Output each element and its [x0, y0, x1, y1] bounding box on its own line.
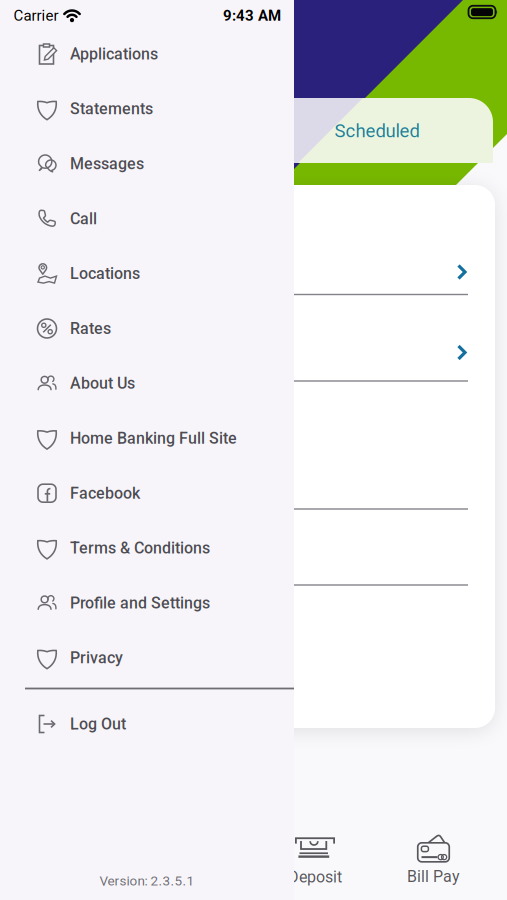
staticText: 9:43 AM: [223, 7, 281, 24]
staticText: Privacy: [70, 648, 123, 667]
button[interactable]: Profile and Settings: [34, 580, 294, 626]
button[interactable]: Rates: [34, 305, 294, 351]
staticText: Facebook: [70, 484, 140, 503]
staticText: Profile and Settings: [70, 594, 210, 612]
button[interactable]: Messages: [34, 141, 294, 187]
staticText: Scheduled: [334, 120, 419, 142]
button[interactable]: About Us: [34, 360, 294, 406]
staticText: Terms & Conditions: [70, 539, 210, 557]
button[interactable]: Locations: [34, 251, 294, 297]
button[interactable]: Bill Pay: [378, 830, 488, 890]
staticText: Log Out: [70, 715, 126, 733]
button[interactable]: [12, 295, 495, 381]
staticText: Messages: [70, 154, 144, 173]
button[interactable]: Facebook: [34, 470, 294, 516]
button[interactable]: Terms & Conditions: [34, 525, 294, 571]
button[interactable]: Scheduled: [257, 98, 497, 163]
staticText: Version: 2.3.5.1: [99, 873, 194, 889]
button[interactable]: Log Out: [34, 701, 294, 747]
button[interactable]: Statements: [34, 86, 294, 132]
staticText: Locations: [70, 264, 140, 283]
button[interactable]: Home Banking Full Site: [34, 415, 294, 461]
staticText: Carrier: [13, 7, 58, 24]
button[interactable]: Applications: [34, 31, 294, 77]
button[interactable]: Deposit: [260, 831, 370, 891]
staticText: About Us: [70, 374, 135, 393]
staticText: Applications: [70, 45, 158, 63]
staticText: Call: [70, 209, 97, 228]
staticText: Deposit: [288, 868, 342, 886]
button[interactable]: [12, 230, 495, 295]
staticText: Rates: [70, 319, 111, 338]
staticText: Home Banking Full Site: [70, 429, 237, 448]
staticText: Bill Pay: [407, 867, 460, 886]
staticText: Statements: [70, 99, 153, 118]
button[interactable]: Privacy: [34, 635, 294, 681]
button[interactable]: Call: [34, 196, 294, 242]
